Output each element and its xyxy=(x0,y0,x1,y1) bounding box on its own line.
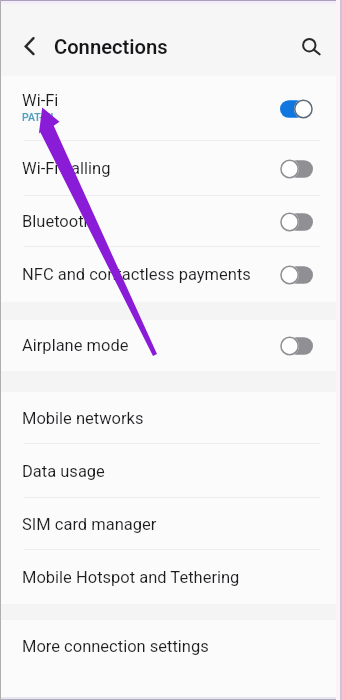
button[interactable]: Search xyxy=(290,23,334,67)
button[interactable]: Mobile networks xyxy=(1,392,336,444)
button[interactable]: Airplane mode xyxy=(1,320,336,371)
button[interactable]: Wi-Fi xyxy=(1,76,336,141)
staticText: Wi-Fi calling xyxy=(22,159,111,178)
button[interactable]: Wi-Fi calling xyxy=(1,141,336,196)
staticText: PAT-NL xyxy=(22,111,57,123)
staticText: Wi-Fi xyxy=(22,91,59,110)
staticText: More connection settings xyxy=(22,637,209,656)
button[interactable]: Back xyxy=(8,27,52,71)
button[interactable]: Bluetooth xyxy=(1,196,336,247)
button[interactable]: NFC and contactless payments xyxy=(1,247,336,302)
button[interactable]: Data usage xyxy=(1,444,336,498)
staticText: Data usage xyxy=(22,462,105,481)
staticText: Mobile networks xyxy=(22,409,144,428)
staticText: Mobile Hotspot and Tethering xyxy=(22,568,240,587)
staticText: SIM card manager xyxy=(22,515,157,534)
staticText: Bluetooth xyxy=(22,212,93,231)
staticText: NFC and contactless payments xyxy=(22,265,251,284)
button[interactable]: Mobile Hotspot and Tethering xyxy=(1,550,336,604)
button[interactable]: More connection settings xyxy=(1,620,336,673)
staticText: Airplane mode xyxy=(22,336,129,355)
staticText: Connections xyxy=(54,35,168,59)
button[interactable]: SIM card manager xyxy=(1,498,336,550)
